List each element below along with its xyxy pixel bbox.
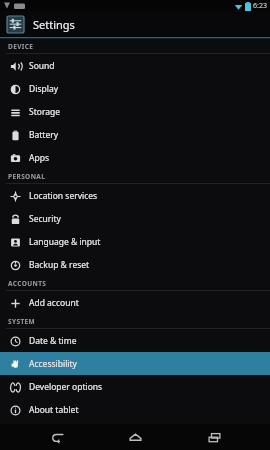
button[interactable]: Display [0,77,270,100]
button[interactable]: Add account [0,291,270,314]
staticText: 6:23 [253,1,267,11]
button[interactable]: Battery [0,123,270,146]
button[interactable]: Home [113,424,157,450]
staticText: Sound [29,60,55,72]
button[interactable]: Settings [0,11,270,37]
button[interactable]: Language & input [0,230,270,253]
button[interactable]: Location services [0,184,270,207]
staticText: Accessibility [29,358,77,370]
staticText: Storage [29,106,61,118]
staticText: Developer options [29,381,103,393]
button[interactable]: About tablet [0,398,270,421]
staticText: Backup & reset [29,259,90,271]
staticText: Display [29,83,58,95]
button[interactable]: Accessibility [0,352,270,375]
button[interactable]: Security [0,207,270,230]
button[interactable]: Sound [0,54,270,77]
button[interactable]: Developer options [0,375,270,398]
staticText: PERSONAL [8,172,46,181]
button[interactable]: Storage [0,100,270,123]
staticText: Add account [29,297,79,309]
staticText: Settings [33,17,75,32]
staticText: Apps [29,152,49,164]
staticText: Battery [29,129,59,141]
staticText: Date & time [29,335,77,347]
staticText: ACCOUNTS [8,279,47,288]
button[interactable]: Back [35,424,79,450]
staticText: DEVICE [8,42,34,51]
button[interactable]: Date & time [0,329,270,352]
button[interactable]: Recent apps [192,424,236,450]
staticText: Security [29,213,61,225]
staticText: Language & input [29,236,101,248]
staticText: About tablet [29,404,79,416]
staticText: Location services [29,190,98,202]
staticText: SYSTEM [8,317,36,326]
button[interactable]: Apps [0,146,270,169]
button[interactable]: Backup & reset [0,253,270,276]
